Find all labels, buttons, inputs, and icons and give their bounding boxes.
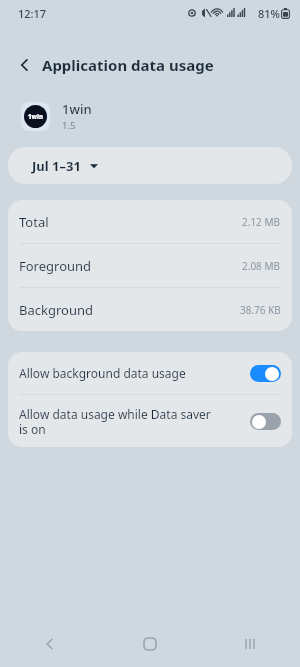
button[interactable]: Toggle on xyxy=(250,365,281,382)
staticText: Allow data usage while Data saver is on xyxy=(19,406,219,437)
staticText: Total xyxy=(19,213,49,231)
button[interactable]: 1win xyxy=(0,94,300,138)
button[interactable]: Total xyxy=(8,200,292,243)
button[interactable]: Allow background data usage xyxy=(8,352,292,394)
staticText: 38.76 KB xyxy=(240,303,281,317)
button[interactable]: Recents xyxy=(200,620,300,667)
staticText: 1win xyxy=(62,100,92,118)
button[interactable]: Background xyxy=(8,288,292,331)
staticText: Jul 1–31 xyxy=(32,157,81,175)
staticText: Application data usage xyxy=(42,55,214,75)
button[interactable]: Back xyxy=(10,50,40,80)
button[interactable]: Allow data usage while Data saver is on xyxy=(8,395,292,447)
button[interactable]: Jul 1–31 xyxy=(8,147,292,184)
staticText: Foreground xyxy=(19,257,92,275)
staticText: 1.5 xyxy=(62,119,76,132)
staticText: 2.08 MB xyxy=(242,259,281,273)
staticText: Allow background data usage xyxy=(19,365,250,381)
button[interactable]: Foreground xyxy=(8,244,292,287)
button[interactable]: Toggle off xyxy=(250,413,281,430)
button[interactable]: Home xyxy=(100,620,200,667)
staticText: 12:17 xyxy=(18,6,47,21)
staticText: 1win xyxy=(28,113,43,121)
staticText: Background xyxy=(19,301,93,319)
staticText: 81% xyxy=(258,6,280,21)
staticText: 2.12 MB xyxy=(242,215,281,229)
button[interactable]: Back xyxy=(0,620,100,667)
